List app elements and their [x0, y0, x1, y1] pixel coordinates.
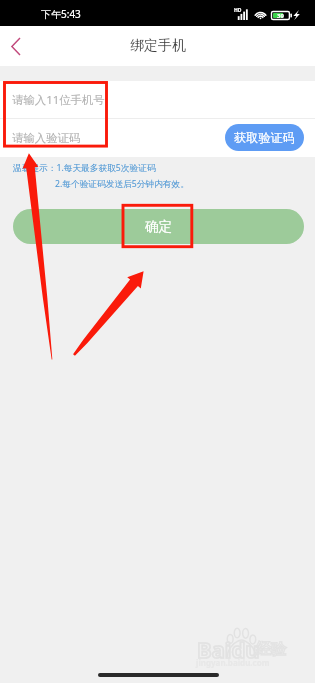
staticText: 温馨提示：1.每天最多获取5次验证码	[13, 162, 156, 174]
staticText: 获取验证码	[234, 130, 295, 145]
button[interactable]: 获取验证码	[225, 124, 304, 151]
staticText: 39	[277, 12, 284, 20]
staticText: 下午5:43	[41, 7, 81, 21]
button[interactable]: 确定	[13, 209, 304, 244]
staticText: 请输入11位手机号	[12, 92, 105, 108]
staticText: HD	[234, 7, 242, 14]
button[interactable]: 请输入验证码	[0, 119, 315, 157]
staticText: Baidu	[197, 634, 260, 664]
button[interactable]: 请输入11位手机号	[0, 81, 315, 118]
staticText: jingyan.baidu.com	[196, 657, 270, 668]
staticText: 经验	[256, 640, 286, 659]
staticText: 确定	[145, 218, 172, 235]
staticText: 绑定手机	[130, 37, 186, 55]
staticText: 2.每个验证码发送后5分钟内有效。	[55, 178, 189, 190]
staticText: 请输入验证码	[12, 131, 81, 145]
button[interactable]: Back	[0, 26, 34, 66]
